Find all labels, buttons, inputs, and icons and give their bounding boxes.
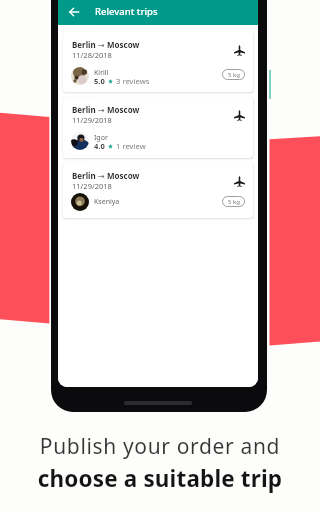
staticText: Berlin (72, 39, 96, 50)
staticText: 3 reviews (116, 76, 150, 86)
staticText: 11/29/2018 (72, 181, 112, 191)
staticText: 1 review (116, 141, 146, 151)
staticText: Berlin (72, 170, 96, 181)
button[interactable]: Berlin (63, 32, 253, 92)
button[interactable]: Berlin (63, 163, 253, 218)
button[interactable]: Flight (230, 172, 248, 190)
staticText: Berlin (72, 104, 96, 115)
button[interactable]: Flight (230, 41, 248, 59)
staticText: 5 kg (228, 198, 240, 206)
staticText: Relevant trips (95, 5, 158, 18)
staticText: 11/29/2018 (72, 115, 112, 125)
staticText: Igor (94, 133, 108, 143)
button[interactable]: Flight (230, 106, 248, 124)
staticText: → (96, 170, 107, 181)
staticText: 11/28/2018 (72, 50, 112, 60)
staticText: Moscow (107, 170, 140, 181)
button[interactable]: Berlin (63, 97, 253, 158)
staticText: 5.0 (94, 76, 105, 86)
staticText: Kirill (94, 68, 109, 78)
staticText: choose a suitable trip (0, 463, 320, 494)
staticText: 4.0 (94, 141, 105, 151)
staticText: Kseniya (94, 197, 120, 207)
staticText: Moscow (107, 39, 140, 50)
button[interactable]: Back (64, 2, 83, 21)
staticText: → (96, 104, 107, 115)
staticText: Publish your order and (0, 432, 320, 461)
staticText: 5 kg (228, 71, 240, 79)
staticText: → (96, 39, 107, 50)
staticText: Moscow (107, 104, 140, 115)
